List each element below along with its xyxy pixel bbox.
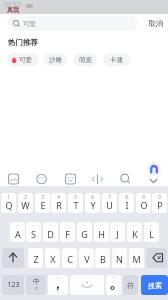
staticText: 0 xyxy=(158,194,161,200)
button[interactable]: 沙雕 xyxy=(44,53,67,66)
button[interactable]: 1 xyxy=(1,193,16,213)
staticText: S xyxy=(31,228,36,240)
staticText: ~ xyxy=(32,223,35,228)
staticText: ˚ xyxy=(113,276,115,283)
staticText: 4 xyxy=(57,194,60,200)
staticText: ~ xyxy=(150,223,153,228)
button[interactable]: ~ xyxy=(10,222,25,242)
button[interactable]: ~ xyxy=(26,222,41,242)
staticText: J xyxy=(116,228,119,240)
staticText: 9 xyxy=(142,194,145,200)
button[interactable]: 7 xyxy=(102,193,117,213)
staticText: ~ xyxy=(133,223,136,228)
staticText: C xyxy=(67,253,73,265)
button[interactable]: 可爱 xyxy=(7,53,39,66)
button[interactable]: 9 xyxy=(136,193,151,213)
staticText: ’ xyxy=(58,276,59,283)
staticText: 7 xyxy=(108,194,111,200)
staticText: B xyxy=(100,253,106,265)
staticText: Z xyxy=(33,253,39,265)
button[interactable]: ~ xyxy=(110,222,125,242)
staticText: W xyxy=(21,199,30,211)
button[interactable]: N xyxy=(112,248,127,268)
button[interactable]: 0 xyxy=(152,193,167,213)
staticText: N xyxy=(116,253,123,265)
button[interactable]: Z xyxy=(28,248,43,268)
staticText: 搜索 xyxy=(148,281,162,290)
staticText: D xyxy=(47,228,54,240)
staticText: T xyxy=(73,199,79,211)
staticText: U xyxy=(106,199,113,211)
button[interactable]: 中 xyxy=(26,275,46,295)
button[interactable]: 符 xyxy=(123,275,138,295)
button[interactable]: 6 xyxy=(85,193,100,213)
button[interactable]: 2 xyxy=(18,193,33,213)
staticText: 中 xyxy=(33,277,40,286)
staticText: R xyxy=(56,199,62,211)
staticText: H xyxy=(98,228,105,240)
staticText: 萌宠 xyxy=(79,56,92,64)
button[interactable] xyxy=(2,248,24,268)
staticText: X xyxy=(50,253,56,265)
staticText: 符 xyxy=(127,281,134,290)
button[interactable] xyxy=(147,162,161,176)
staticText: 取消 xyxy=(148,19,163,28)
staticText: 热门推荐 xyxy=(8,38,38,47)
staticText: ~ xyxy=(116,223,119,228)
staticText: 沙雕 xyxy=(49,56,62,64)
staticText: 1 xyxy=(7,194,10,200)
button[interactable]: ~ xyxy=(127,222,142,242)
staticText: E xyxy=(40,199,46,211)
button[interactable]: ~ xyxy=(60,222,75,242)
staticText: 6 xyxy=(91,194,94,200)
button[interactable] xyxy=(146,248,167,268)
staticText: P xyxy=(157,199,163,211)
button[interactable]: 5 xyxy=(68,193,83,213)
staticText: 2 xyxy=(24,194,27,200)
staticText: 可爱 xyxy=(19,56,32,64)
staticText: 3 xyxy=(41,194,44,200)
staticText: 123 xyxy=(7,280,20,290)
button[interactable]: ˚ xyxy=(106,275,121,295)
staticText: V xyxy=(84,253,90,265)
button[interactable]: V xyxy=(79,248,94,268)
staticText: Q xyxy=(5,199,13,211)
button[interactable]: ~ xyxy=(94,222,109,242)
staticText: ~ xyxy=(16,223,19,228)
button[interactable]: 搜索 xyxy=(141,275,168,295)
staticText: F xyxy=(65,228,70,240)
staticText: A xyxy=(15,228,21,240)
button[interactable]: 卡通 xyxy=(103,53,130,66)
button[interactable]: 可爱 xyxy=(7,16,138,31)
staticText: I xyxy=(125,199,129,211)
button[interactable]: ~ xyxy=(43,222,58,242)
staticText: 真我 xyxy=(7,6,19,14)
staticText: x xyxy=(35,285,38,292)
button[interactable]: 3 xyxy=(35,193,50,213)
button[interactable]: ~ xyxy=(77,222,92,242)
button[interactable]: 萌宠 xyxy=(73,53,97,66)
staticText: G xyxy=(81,228,88,240)
button[interactable]: 4 xyxy=(51,193,66,213)
staticText: M xyxy=(132,253,141,265)
button[interactable]: B xyxy=(95,248,110,268)
button[interactable]: 取消 xyxy=(143,16,167,30)
staticText: 可爱 xyxy=(23,20,36,28)
staticText: ~ xyxy=(100,223,103,228)
button[interactable]: X xyxy=(45,248,60,268)
button[interactable]: M xyxy=(129,248,144,268)
button[interactable]: ’ xyxy=(48,275,68,295)
button[interactable]: C xyxy=(62,248,77,268)
staticText: 8 xyxy=(125,194,128,200)
staticText: ~ xyxy=(49,223,52,228)
staticText: L xyxy=(149,228,154,240)
button[interactable]: 123 xyxy=(2,275,24,295)
button[interactable]: 8 xyxy=(119,193,134,213)
button[interactable] xyxy=(70,275,104,295)
staticText: ~ xyxy=(83,223,86,228)
staticText: 卡通 xyxy=(110,56,123,64)
staticText: Y xyxy=(90,199,96,211)
staticText: ~ xyxy=(66,223,69,228)
button[interactable]: ~ xyxy=(144,222,159,242)
staticText: 5 xyxy=(74,194,77,200)
